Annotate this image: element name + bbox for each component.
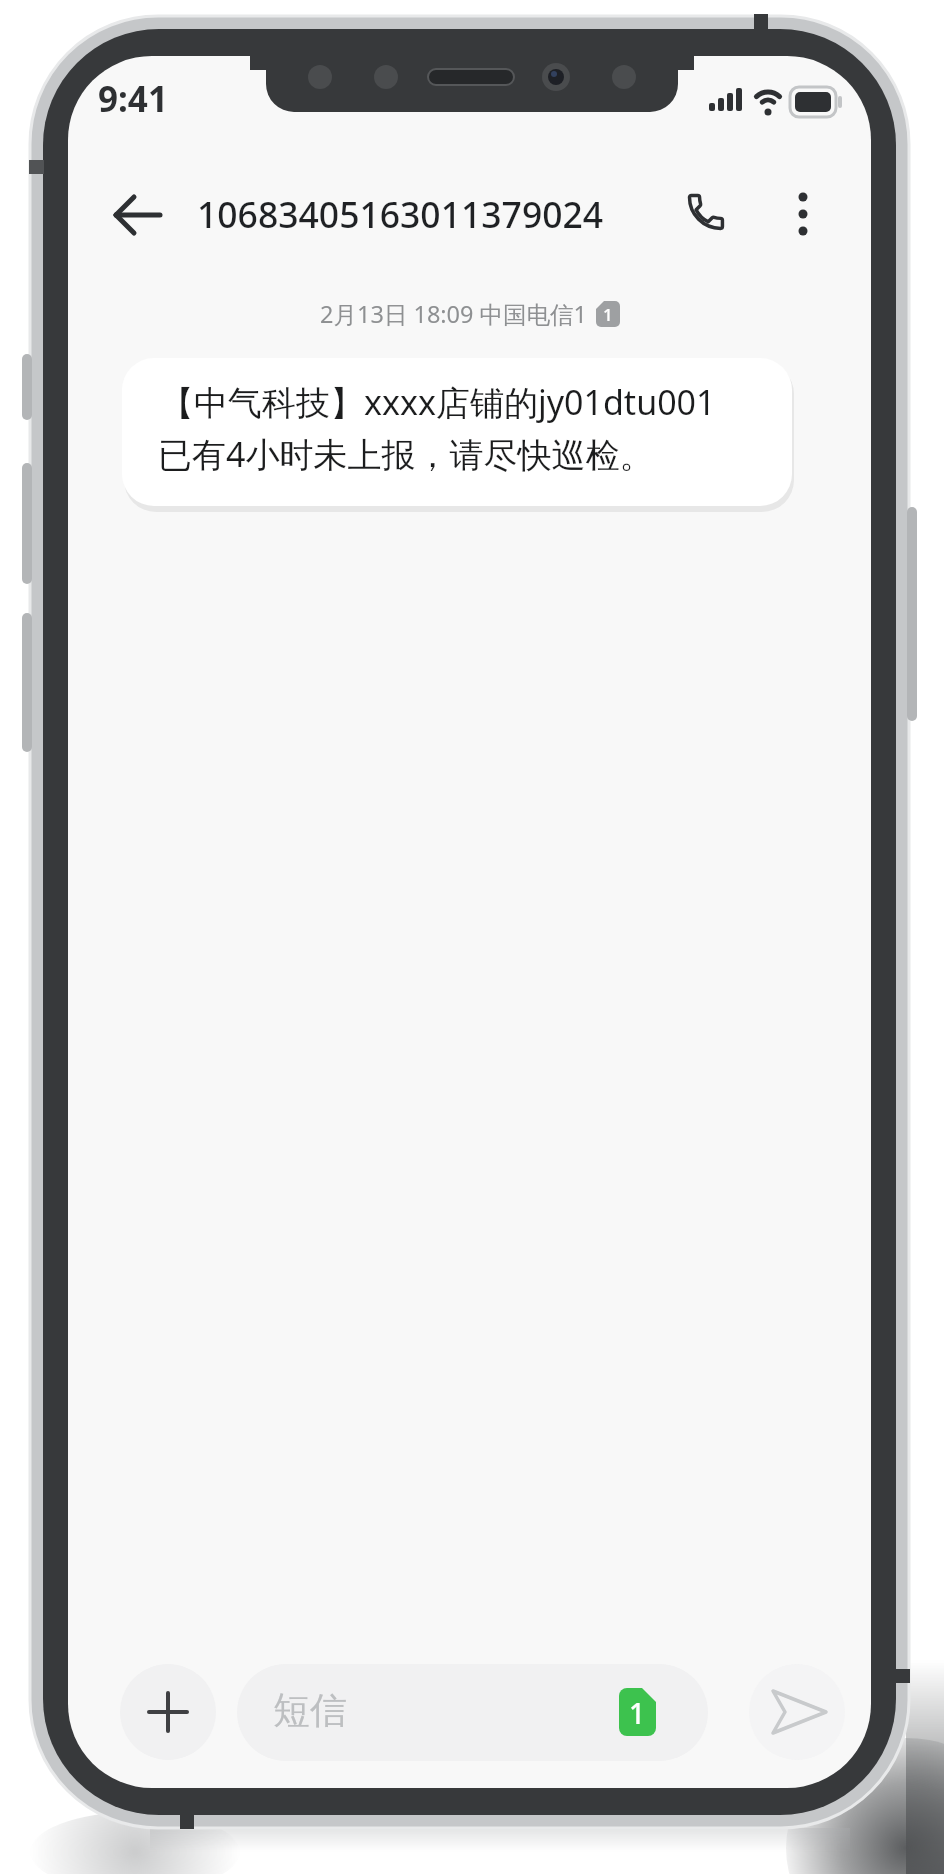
staticText: 1 <box>629 1694 646 1732</box>
button[interactable] <box>775 185 831 245</box>
button[interactable]: 10683405163011379024 <box>197 190 604 238</box>
staticText: 短信 <box>273 1687 347 1734</box>
button[interactable] <box>680 185 740 245</box>
staticText: 【中气科技】xxxx店铺的jy01dtu001 <box>160 379 716 425</box>
button[interactable] <box>100 196 160 236</box>
button[interactable] <box>120 1664 216 1760</box>
staticText: 已有4小时未上报，请尽快巡检。 <box>158 431 654 477</box>
staticText: 2月13日 18:09 中国电信1 <box>320 298 588 330</box>
staticText: 9:41 <box>98 75 168 123</box>
staticText: 10683405163011379024 <box>197 190 604 238</box>
button[interactable] <box>749 1664 845 1760</box>
staticText: 1 <box>603 303 613 326</box>
button[interactable] <box>237 1664 708 1761</box>
